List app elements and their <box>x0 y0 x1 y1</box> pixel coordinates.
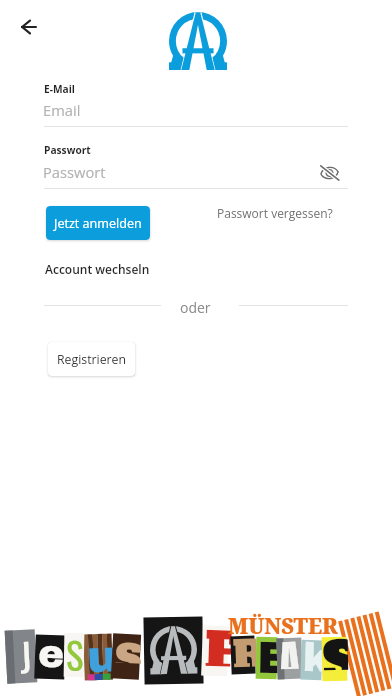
staticText: u <box>86 631 116 678</box>
staticText: F <box>204 616 232 667</box>
staticText: Email <box>43 100 81 120</box>
staticText: MÜNSTER <box>228 612 338 641</box>
staticText: Passwort <box>43 162 106 182</box>
staticText: J <box>18 627 33 681</box>
staticText: s <box>115 617 144 664</box>
staticText: e <box>37 633 66 675</box>
staticText: Registrieren <box>57 351 127 368</box>
staticText: Jetzt anmelden <box>54 215 142 232</box>
button[interactable]: Jetzt anmelden <box>46 206 150 240</box>
button[interactable]: Back <box>8 6 49 47</box>
button[interactable]: Show password <box>317 161 341 185</box>
staticText: E-Mail <box>44 82 75 96</box>
staticText: R <box>232 628 257 667</box>
button[interactable]: Account wechseln <box>45 260 150 278</box>
staticText: Account wechseln <box>45 261 150 277</box>
staticText: k <box>302 636 325 676</box>
staticText: E <box>257 633 278 675</box>
staticText: S <box>66 627 84 671</box>
staticText: Passwort <box>44 143 91 157</box>
button[interactable]: Registrieren <box>48 342 135 376</box>
staticText: Passwort vergessen? <box>217 205 333 221</box>
staticText: oder <box>180 298 211 317</box>
staticText: S <box>322 626 348 670</box>
staticText: A <box>278 628 300 669</box>
button[interactable]: Passwort vergessen? <box>217 203 333 223</box>
